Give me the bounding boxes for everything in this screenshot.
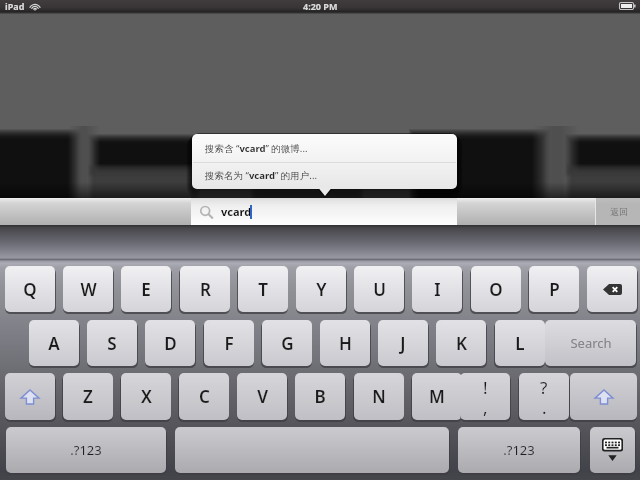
staticText: 搜索名为 “vcard” 的用户... [205, 169, 317, 182]
staticText: D [164, 332, 177, 355]
button[interactable]: Space [175, 427, 449, 473]
staticText: . [542, 396, 547, 419]
staticText: M [429, 385, 445, 408]
button[interactable]: ? [519, 373, 569, 420]
staticText: iPad [5, 0, 25, 12]
button[interactable]: P [529, 266, 579, 312]
button[interactable]: Hide keyboard [590, 427, 635, 473]
staticText: C [199, 385, 210, 408]
staticText: N [372, 385, 386, 408]
button[interactable]: F [204, 320, 254, 366]
button[interactable]: M [412, 373, 462, 420]
button[interactable]: .?123 [458, 427, 580, 473]
staticText: O [489, 278, 503, 301]
staticText: 返回 [610, 206, 628, 217]
staticText: I [434, 278, 441, 301]
button[interactable]: .?123 [6, 427, 166, 473]
button[interactable]: N [354, 373, 404, 420]
staticText: X [141, 385, 152, 408]
button[interactable]: Shift [5, 373, 55, 420]
button[interactable]: L [495, 320, 545, 366]
button[interactable]: ! [460, 373, 510, 420]
staticText: R [200, 278, 211, 301]
staticText: K [456, 332, 467, 355]
button[interactable]: V [237, 373, 287, 420]
staticText: B [314, 385, 326, 408]
button[interactable]: 搜索名为 “vcard” 的用户... [192, 162, 457, 189]
button[interactable]: Y [296, 266, 346, 312]
button[interactable]: W [63, 266, 113, 312]
button[interactable]: K [436, 320, 486, 366]
staticText: F [224, 332, 234, 355]
button[interactable]: U [354, 266, 404, 312]
button[interactable]: C [179, 373, 229, 420]
button[interactable]: 返回 [596, 198, 640, 225]
staticText: 4:20 PM [303, 0, 338, 12]
button[interactable]: vcard [191, 198, 457, 225]
staticText: G [281, 332, 294, 355]
staticText: ! [483, 376, 488, 399]
staticText: Q [23, 278, 37, 301]
button[interactable]: E [121, 266, 171, 312]
staticText: Z [83, 385, 93, 408]
button[interactable]: Backspace [587, 266, 637, 312]
staticText: Search [570, 334, 612, 352]
button[interactable]: X [121, 373, 171, 420]
staticText: T [258, 278, 268, 301]
staticText: S [107, 332, 117, 355]
button[interactable]: A [29, 320, 79, 366]
staticText: U [373, 278, 386, 301]
staticText: 搜索含 “vcard” 的微博... [205, 142, 308, 155]
button[interactable]: H [320, 320, 370, 366]
staticText: E [141, 278, 151, 301]
staticText: L [515, 332, 525, 355]
button[interactable]: G [262, 320, 312, 366]
button[interactable]: D [145, 320, 195, 366]
button[interactable]: I [412, 266, 462, 312]
staticText: , [483, 396, 488, 419]
button[interactable]: B [295, 373, 345, 420]
staticText: H [339, 332, 352, 355]
button[interactable]: 搜索含 “vcard” 的微博... [192, 134, 457, 162]
staticText: .?123 [70, 441, 102, 459]
button[interactable]: T [238, 266, 288, 312]
staticText: V [257, 385, 268, 408]
staticText: vcard [221, 204, 252, 219]
staticText: ? [540, 376, 548, 399]
button[interactable]: Search [545, 320, 636, 366]
button[interactable]: Z [63, 373, 113, 420]
staticText: P [549, 278, 560, 301]
staticText: W [80, 278, 97, 301]
button[interactable]: Shift [570, 373, 637, 420]
button[interactable]: R [180, 266, 230, 312]
button[interactable]: Q [5, 266, 55, 312]
staticText: .?123 [503, 441, 535, 459]
staticText: A [48, 332, 60, 355]
button[interactable]: O [471, 266, 521, 312]
staticText: J [400, 332, 406, 355]
staticText: Y [316, 278, 327, 301]
button[interactable]: S [87, 320, 137, 366]
button[interactable]: J [378, 320, 428, 366]
